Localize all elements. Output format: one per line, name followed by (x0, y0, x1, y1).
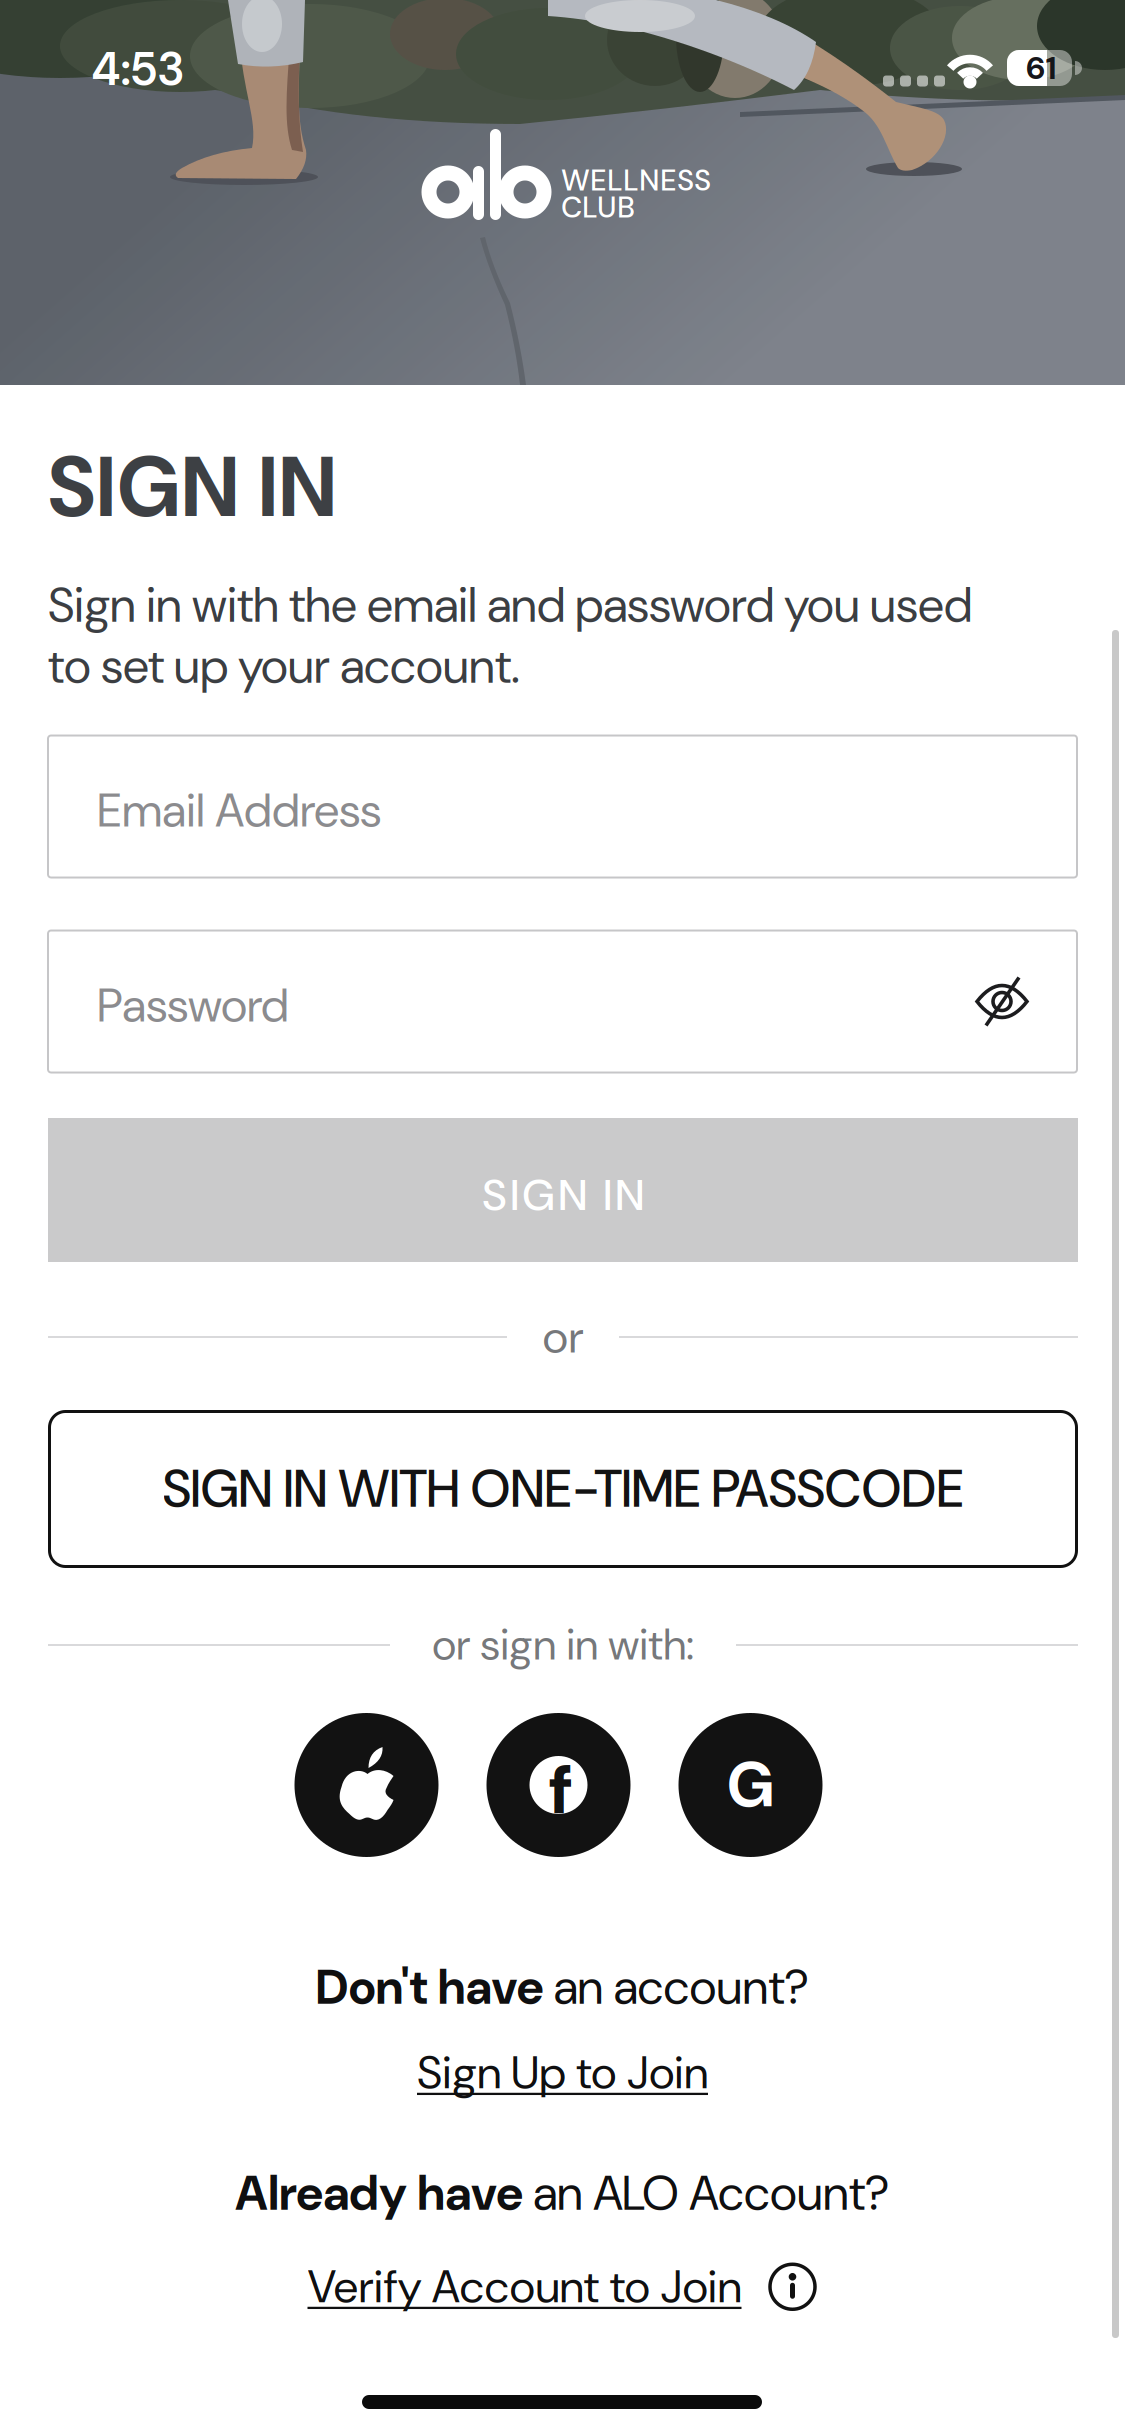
staticText: 4:53 (91, 39, 184, 99)
staticText: G (727, 1745, 774, 1825)
staticText: or sign in with: (432, 1618, 694, 1672)
staticText: or (542, 1308, 583, 1366)
button[interactable]: Show password (973, 974, 1031, 1028)
button[interactable]: Sign in with Facebook (486, 1713, 630, 1857)
button[interactable]: Password (48, 930, 1078, 1073)
staticText: Email Address (97, 781, 381, 840)
staticText: Don't have an account? (315, 1957, 809, 2018)
staticText: SIGN IN WITH ONE-TIME PASSCODE (162, 1456, 963, 1522)
staticText: CLUB (561, 189, 635, 226)
staticText: 61 (1025, 48, 1056, 88)
staticText: Sign in with the email and password you … (48, 575, 972, 697)
staticText: Sign Up to Join (417, 2044, 708, 2101)
button[interactable]: SIGN IN WITH ONE-TIME PASSCODE (48, 1410, 1078, 1568)
staticText: Already have an ALO Account? (235, 2163, 890, 2224)
staticText: f (549, 1746, 572, 1834)
staticText: Verify Account to Join (307, 2258, 741, 2315)
button[interactable]: SIGN IN (48, 1118, 1078, 1262)
staticText: SIGN IN (482, 1167, 644, 1223)
staticText: WELLNESS (561, 162, 711, 199)
button[interactable]: Verify Account to Join (307, 2258, 817, 2315)
button[interactable]: Sign in with Google (678, 1713, 822, 1857)
button[interactable]: Sign Up to Join (417, 2044, 708, 2101)
button[interactable]: Sign in with Apple (294, 1713, 438, 1857)
button[interactable]: Email Address (48, 735, 1078, 878)
staticText: Password (97, 976, 289, 1035)
staticText: SIGN IN (48, 434, 336, 541)
